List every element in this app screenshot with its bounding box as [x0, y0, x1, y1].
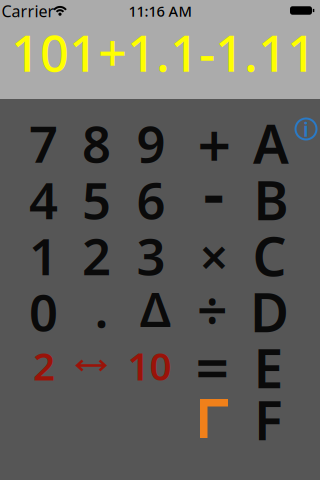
button[interactable]: 9 [125, 116, 177, 170]
staticText: E [253, 332, 283, 403]
button[interactable]: = [186, 340, 238, 394]
staticText: C [252, 220, 286, 291]
staticText: - [203, 147, 224, 235]
staticText: 7 [29, 109, 58, 177]
button[interactable]: E [242, 340, 294, 394]
staticText: i [303, 116, 309, 142]
staticText: B [253, 164, 288, 235]
button[interactable]: 4 [17, 172, 69, 226]
button[interactable]: 5 [70, 172, 122, 226]
staticText: 4 [29, 166, 58, 233]
button[interactable]: Δ [129, 282, 181, 336]
staticText: Carrier [1, 0, 54, 22]
staticText: 8 [82, 109, 111, 177]
staticText: Δ [140, 278, 171, 340]
staticText: 5 [82, 166, 111, 233]
staticText: × [199, 222, 228, 290]
button[interactable]: D [243, 284, 295, 338]
staticText: 10 [127, 340, 171, 391]
button[interactable]: 8 [70, 116, 122, 170]
staticText: 101+1.1-1.11 [11, 18, 316, 86]
staticText: . [94, 274, 108, 342]
button[interactable]: × [188, 229, 240, 283]
button[interactable]: Gamma [188, 399, 240, 438]
staticText: D [250, 276, 289, 347]
staticText: 3 [136, 222, 165, 289]
staticText: 2 [82, 222, 111, 289]
staticText: 0 [29, 278, 58, 345]
button[interactable]: 1 [17, 228, 69, 282]
button[interactable]: Info [294, 117, 318, 141]
button[interactable]: C [243, 228, 295, 282]
button[interactable]: A [245, 116, 297, 170]
staticText: 2 [33, 340, 55, 391]
staticText: ÷ [197, 274, 228, 345]
button[interactable]: 7 [17, 116, 69, 170]
button[interactable]: ÷ [186, 282, 238, 336]
button[interactable]: 2 [70, 228, 122, 282]
staticText: 9 [136, 109, 165, 177]
staticText: 1 [29, 222, 58, 289]
staticText: A [253, 108, 289, 178]
staticText: 11:16 AM [128, 1, 191, 21]
button[interactable]: 2 [14, 340, 186, 394]
button[interactable]: 0 [17, 284, 69, 338]
button[interactable]: B [245, 172, 297, 226]
button[interactable]: - [187, 164, 239, 218]
staticText: 6 [136, 166, 165, 233]
staticText: = [195, 328, 229, 406]
button[interactable]: . [75, 281, 127, 335]
button[interactable]: F [242, 392, 294, 446]
button[interactable]: 3 [125, 228, 177, 282]
staticText: + [197, 106, 231, 184]
button[interactable]: 6 [125, 172, 177, 226]
button[interactable]: + [188, 118, 240, 172]
staticText: F [254, 384, 283, 455]
